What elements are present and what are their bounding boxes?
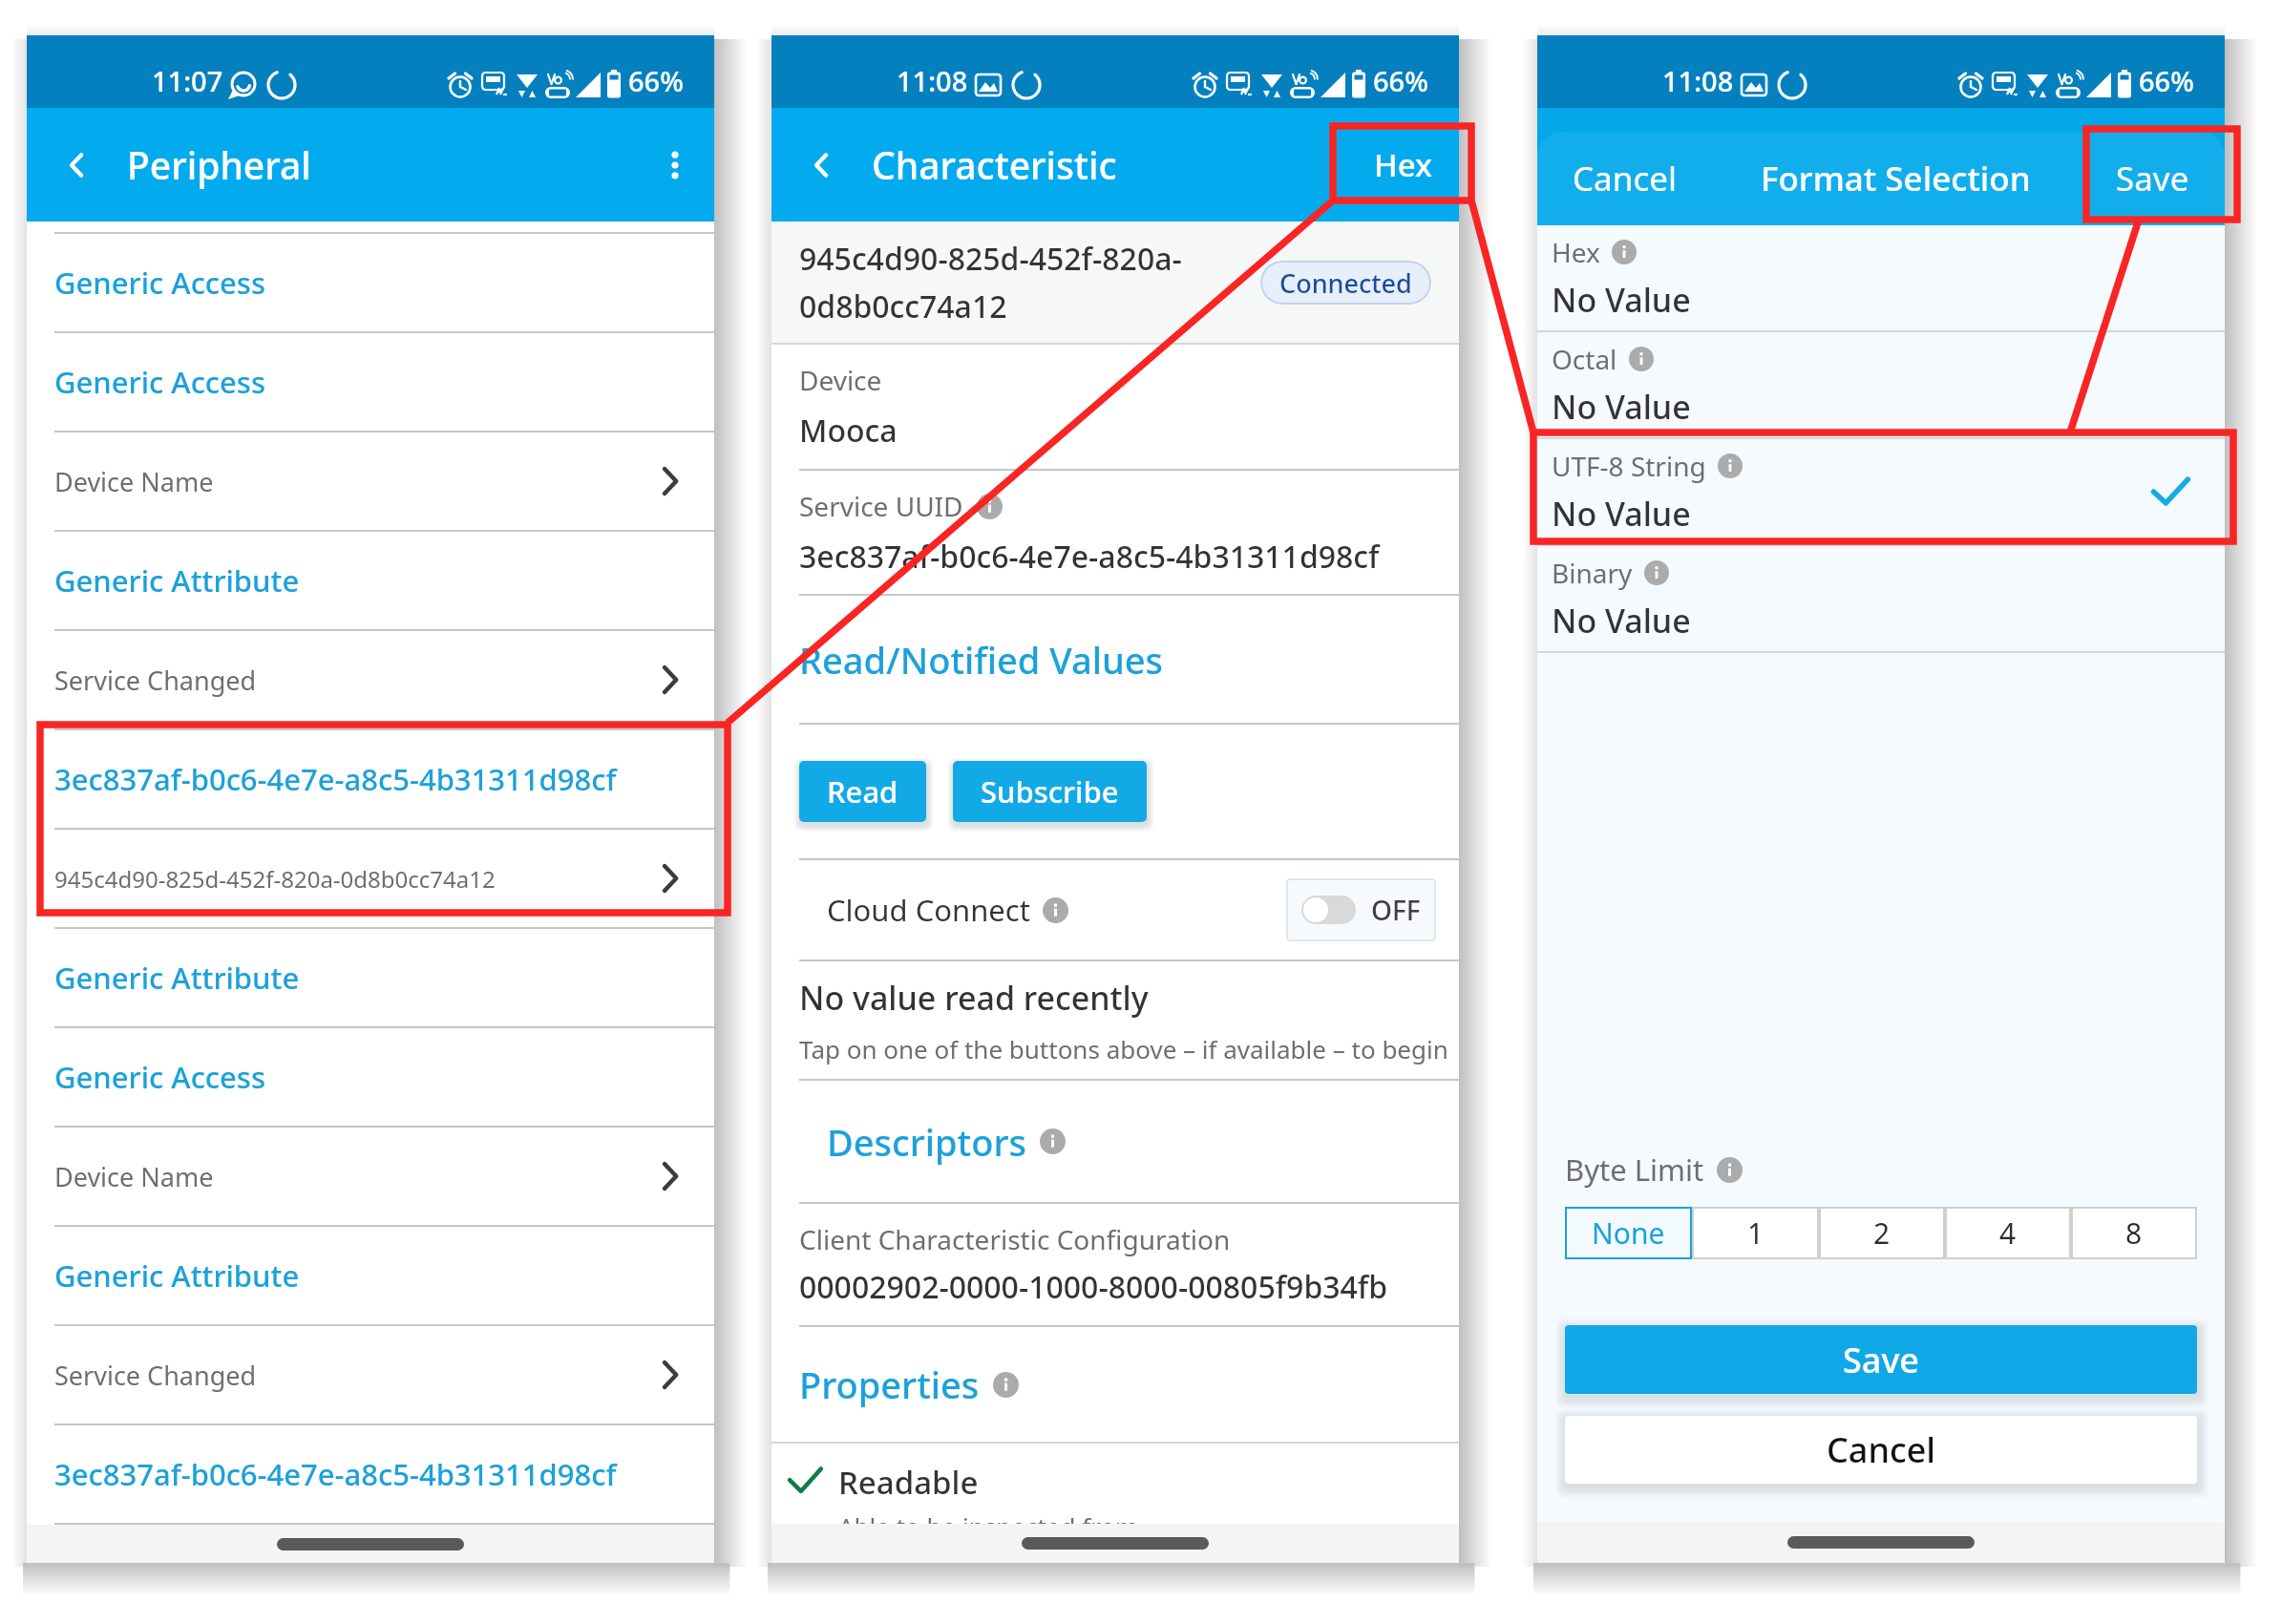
staticText: 1 — [1747, 1213, 1764, 1253]
staticText: 66% — [1373, 62, 1428, 99]
button[interactable]: Generic Attribute — [27, 532, 714, 629]
staticText: 8 — [2125, 1213, 2143, 1253]
staticText: 3ec837af-b0c6-4e7e-a8c5-4b31311d98cf — [54, 1454, 617, 1494]
staticText: Byte Limit — [1565, 1149, 1704, 1190]
button[interactable]: Generic Access — [27, 1028, 714, 1126]
button[interactable]: Cancel — [1565, 1416, 2197, 1484]
staticText: Service Changed — [54, 663, 257, 698]
button[interactable]: 1 — [1692, 1207, 1819, 1259]
staticText: None — [1592, 1213, 1665, 1253]
button[interactable]: Read — [799, 761, 926, 822]
button[interactable]: Hex — [1537, 225, 2225, 330]
staticText: Read/Notified Values — [799, 635, 1164, 685]
staticText: Generic Attribute — [54, 560, 300, 601]
staticText: Peripheral — [127, 139, 311, 190]
button[interactable]: OFF — [1286, 878, 1436, 941]
staticText: Descriptors — [827, 1117, 1026, 1167]
button[interactable]: Generic Access — [27, 234, 714, 331]
button[interactable]: 2 — [1819, 1207, 1945, 1259]
staticText: Client Characteristic Configuration — [799, 1221, 1231, 1257]
button[interactable]: Generic Attribute — [27, 929, 714, 1026]
button[interactable]: 945c4d90-825d-452f-820a-0d8b0cc74a12 — [27, 830, 714, 927]
staticText: 00002902-0000-1000-8000-00805f9b34fb — [799, 1266, 1388, 1308]
staticText: Subscribe — [981, 771, 1119, 812]
staticText: 945c4d90-825d-452f-820a-0d8b0cc74a12 — [54, 863, 496, 895]
button[interactable]: Octal — [1537, 332, 2225, 437]
button[interactable]: Back — [27, 108, 127, 221]
staticText: Device — [799, 362, 882, 398]
staticText: Binary — [1552, 555, 1633, 591]
staticText: Cloud Connect — [827, 890, 1030, 930]
staticText: Generic Access — [54, 1057, 265, 1097]
button[interactable]: 3ec837af-b0c6-4e7e-a8c5-4b31311d98cf — [27, 1425, 714, 1523]
staticText: Cancel — [1573, 156, 1677, 201]
staticText: 66% — [2139, 62, 2194, 99]
staticText: Device Name — [54, 464, 214, 499]
staticText: Mooca — [799, 410, 898, 452]
staticText: No value read recently — [799, 976, 1149, 1020]
staticText: No Value — [1552, 278, 1691, 322]
staticText: Device Name — [54, 1159, 214, 1194]
staticText: 3ec837af-b0c6-4e7e-a8c5-4b31311d98cf — [54, 759, 617, 799]
staticText: Service UUID — [799, 488, 963, 524]
button[interactable]: Subscribe — [953, 761, 1147, 822]
button[interactable]: Binary — [1537, 546, 2225, 651]
staticText: Save — [2116, 156, 2189, 201]
button[interactable]: Save — [1565, 1325, 2197, 1394]
button[interactable]: Service Changed — [27, 1326, 714, 1424]
button[interactable]: Hex — [1347, 108, 1459, 221]
staticText: Cancel — [1827, 1426, 1936, 1473]
staticText: 11:08 — [1662, 62, 1734, 99]
button[interactable]: 4 — [1945, 1207, 2071, 1259]
staticText: Generic Attribute — [54, 1255, 300, 1296]
button[interactable]: UTF-8 String — [1537, 439, 2225, 544]
button[interactable]: Back — [771, 108, 872, 221]
staticText: UTF-8 String — [1552, 448, 1706, 484]
staticText: Characteristic — [872, 139, 1117, 190]
staticText: Save — [1843, 1337, 1920, 1383]
staticText: Generic Attribute — [54, 958, 300, 998]
staticText: 66% — [628, 62, 684, 99]
button[interactable]: More options — [636, 108, 714, 221]
staticText: Connected — [1279, 265, 1412, 301]
staticText: No Value — [1552, 385, 1691, 429]
staticText: Generic Access — [54, 263, 265, 303]
staticText: Hex — [1552, 234, 1600, 270]
staticText: 3ec837af-b0c6-4e7e-a8c5-4b31311d98cf — [799, 536, 1380, 578]
staticText: 2 — [1873, 1213, 1891, 1253]
button[interactable]: 8 — [2071, 1207, 2197, 1259]
button[interactable]: Connected — [1260, 261, 1431, 305]
button[interactable]: Cancel — [1537, 119, 1712, 237]
staticText: 945c4d90-825d-452f-820a- 0d8b0cc74a12 — [799, 238, 1200, 327]
staticText: Read — [827, 771, 898, 812]
staticText: 11:07 — [152, 62, 223, 99]
button[interactable]: Save — [2081, 119, 2225, 237]
button[interactable]: None — [1565, 1207, 1692, 1259]
staticText: No Value — [1552, 492, 1691, 536]
button[interactable]: Generic Access — [27, 333, 714, 431]
staticText: Octal — [1552, 341, 1617, 377]
staticText: Readable — [838, 1461, 979, 1504]
button[interactable]: Service Changed — [27, 631, 714, 728]
staticText: Service Changed — [54, 1358, 257, 1393]
staticText: Able to be inspected from — [838, 1509, 1139, 1524]
staticText: Format Selection — [1761, 156, 2031, 201]
staticText: Properties — [799, 1360, 980, 1409]
button[interactable]: 3ec837af-b0c6-4e7e-a8c5-4b31311d98cf — [27, 730, 714, 828]
staticText: No Value — [1552, 599, 1691, 643]
staticText: 11:08 — [897, 62, 968, 99]
staticText: Generic Access — [54, 362, 265, 402]
staticText: OFF — [1371, 892, 1421, 928]
staticText: 4 — [1999, 1213, 2017, 1253]
staticText: Hex — [1374, 143, 1432, 186]
button[interactable]: Generic Attribute — [27, 1227, 714, 1324]
staticText: Tap on one of the buttons above – if ava… — [799, 1032, 1448, 1065]
button[interactable]: Device Name — [27, 432, 714, 530]
button[interactable]: Device Name — [27, 1128, 714, 1225]
